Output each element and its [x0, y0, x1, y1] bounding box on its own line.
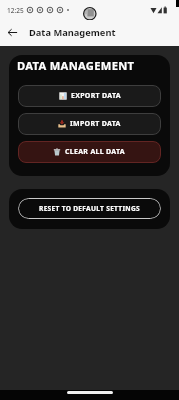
- button[interactable]: Back: [0, 21, 24, 45]
- staticText: EXPORT DATA: [71, 91, 121, 101]
- staticText: CLEAR ALL DATA: [65, 147, 126, 157]
- button[interactable]: EXPORT DATA: [18, 85, 161, 107]
- staticText: 12:25: [7, 6, 24, 15]
- button[interactable]: RESET TO DEFAULT SETTINGS: [18, 198, 161, 219]
- staticText: IMPORT DATA: [70, 119, 121, 129]
- staticText: DATA MANAGEMENT: [17, 58, 135, 73]
- staticText: Data Management: [29, 26, 116, 39]
- button[interactable]: CLEAR ALL DATA: [18, 141, 161, 163]
- button[interactable]: IMPORT DATA: [18, 113, 161, 135]
- staticText: RESET TO DEFAULT SETTINGS: [39, 204, 140, 213]
